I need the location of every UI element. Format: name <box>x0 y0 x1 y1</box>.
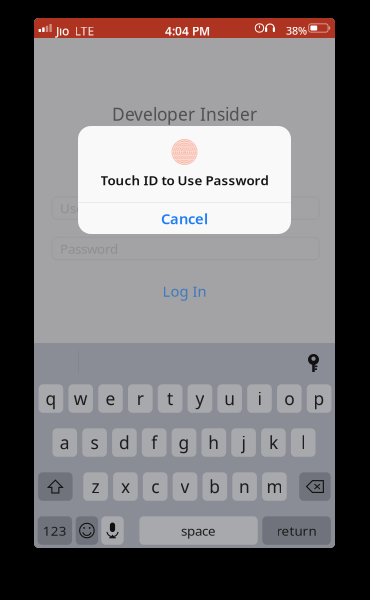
staticText: x <box>121 475 130 498</box>
button[interactable]: h <box>201 428 226 457</box>
staticText: Username <box>60 199 125 217</box>
button[interactable]: w <box>68 384 93 413</box>
staticText: l <box>301 431 305 454</box>
staticText: c <box>151 475 159 498</box>
staticText: Password <box>60 240 118 257</box>
button[interactable]: 123 <box>38 516 72 545</box>
staticText: s <box>91 431 99 454</box>
button[interactable]: o <box>277 384 302 413</box>
staticText: w <box>74 387 88 410</box>
staticText: Log In <box>162 281 206 301</box>
button[interactable]: p <box>307 384 331 413</box>
button[interactable]: e <box>98 384 123 413</box>
button[interactable]: z <box>83 472 108 501</box>
staticText: n <box>239 475 250 498</box>
staticText: o <box>284 387 294 410</box>
staticText: a <box>60 431 70 454</box>
button[interactable]: l <box>291 428 315 457</box>
staticText: j <box>242 431 246 454</box>
staticText: 38% <box>286 23 307 38</box>
button[interactable]: t <box>158 384 182 413</box>
staticText: h <box>208 431 219 454</box>
button[interactable]: return <box>262 516 331 545</box>
button[interactable] <box>299 472 331 501</box>
button[interactable]: j <box>231 428 256 457</box>
button[interactable]: c <box>143 472 167 501</box>
staticText: i <box>257 387 261 410</box>
button[interactable]: i <box>247 384 272 413</box>
button[interactable]: b <box>202 472 227 501</box>
staticText: k <box>269 431 278 454</box>
button[interactable]: u <box>217 384 242 413</box>
staticText: 123 <box>43 522 67 539</box>
button[interactable] <box>76 516 98 545</box>
staticText: p <box>314 387 325 410</box>
button[interactable]: m <box>262 472 287 501</box>
staticText: 4:04 PM <box>165 23 210 39</box>
staticText: e <box>105 387 115 410</box>
staticText: Jio <box>56 23 69 39</box>
button[interactable]: space <box>139 516 258 545</box>
button[interactable]: r <box>128 384 153 413</box>
button[interactable]: s <box>82 428 107 457</box>
staticText: Touch ID to Use Password <box>100 171 268 189</box>
button[interactable]: d <box>112 428 137 457</box>
staticText: LTE <box>74 23 94 39</box>
staticText: space <box>181 522 216 539</box>
button[interactable]: Cancel <box>78 203 291 234</box>
button[interactable]: n <box>232 472 257 501</box>
button[interactable]: v <box>173 472 197 501</box>
staticText: Cancel <box>161 209 208 228</box>
button[interactable]: x <box>113 472 138 501</box>
staticText: Developer Insider <box>112 102 257 125</box>
staticText: return <box>277 522 317 539</box>
button[interactable]: a <box>52 428 77 457</box>
staticText: q <box>45 387 56 410</box>
staticText: b <box>209 475 220 498</box>
staticText: r <box>137 387 144 410</box>
button[interactable] <box>38 472 73 501</box>
staticText: f <box>151 431 157 454</box>
staticText: d <box>119 431 130 454</box>
button[interactable]: y <box>188 384 212 413</box>
button[interactable]: k <box>261 428 286 457</box>
button[interactable] <box>101 516 124 545</box>
button[interactable]: g <box>172 428 196 457</box>
staticText: z <box>92 475 100 498</box>
staticText: y <box>195 387 204 410</box>
staticText: u <box>224 387 235 410</box>
button[interactable]: Log In <box>34 281 335 301</box>
staticText: g <box>178 431 189 454</box>
staticText: m <box>266 475 282 498</box>
staticText: v <box>180 475 189 498</box>
staticText: t <box>167 387 173 410</box>
button[interactable]: f <box>142 428 166 457</box>
button[interactable]: q <box>39 384 63 413</box>
